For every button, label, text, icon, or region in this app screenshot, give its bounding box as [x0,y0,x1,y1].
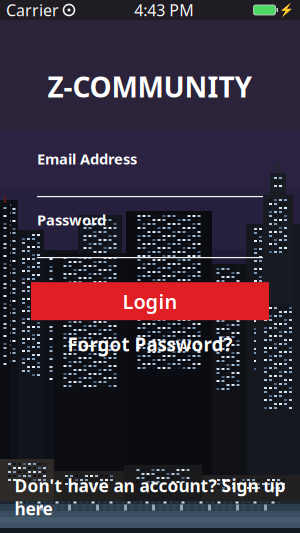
staticText: Forgot Password? [67,332,232,357]
button[interactable]: Login [31,282,269,320]
staticText: Z-COMMUNITY [47,68,252,105]
staticText [59,0,63,21]
staticText: Login [122,288,177,314]
staticText: 4:43 PM [134,0,194,21]
staticText: Password [37,210,106,230]
button[interactable]: Don't have an account? Sign up here [10,487,290,507]
staticText: Carrier [6,0,59,21]
button[interactable]: Forgot Password? [31,334,269,354]
staticText: ⚡ [279,3,294,17]
staticText: Don't have an account? Sign up here [14,474,285,520]
staticText: Email Address [37,149,137,169]
